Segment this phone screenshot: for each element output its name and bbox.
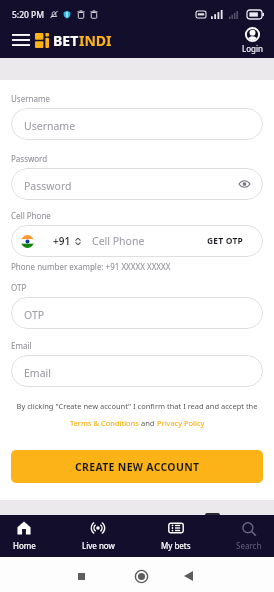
staticText: BET (53, 31, 79, 50)
button[interactable]: Email (11, 355, 263, 387)
button[interactable]: Home (127, 562, 155, 590)
staticText: Username (11, 93, 50, 104)
staticText: CREATE NEW ACCOUNT (75, 460, 200, 474)
staticText: Live now (82, 540, 115, 551)
button[interactable]: GET OTP (207, 235, 244, 247)
staticText: Cell Phone (92, 234, 145, 248)
button[interactable]: Recents (67, 562, 95, 590)
button[interactable]: CREATE NEW ACCOUNT (11, 450, 263, 483)
button[interactable]: Back (174, 562, 202, 590)
staticText: Phone number example: +91 XXXXX XXXXX (11, 261, 171, 272)
other: Show password (239, 180, 250, 188)
button[interactable]: BET (35, 31, 112, 50)
button[interactable]: Select country code (21, 234, 81, 248)
staticText: OTP (24, 308, 45, 322)
button[interactable]: Terms & Conditions (70, 418, 139, 428)
staticText: By clicking "Create new account" I confi… (11, 401, 263, 411)
button[interactable]: Username (11, 108, 263, 140)
button[interactable]: Home (0, 515, 53, 557)
staticText: Login (242, 43, 263, 54)
button[interactable]: My bets (147, 515, 205, 557)
staticText: Password (11, 153, 48, 164)
staticText: Email (11, 340, 32, 351)
staticText: and (139, 418, 157, 428)
staticText: INDI (79, 31, 112, 50)
staticText: 5:20 PM (12, 9, 45, 21)
staticText: Username (24, 119, 76, 133)
staticText: Home (13, 540, 36, 551)
staticText: Cell Phone (11, 210, 51, 221)
staticText: My bets (161, 540, 191, 551)
staticText: Password (24, 179, 72, 193)
staticText: +91 (53, 234, 71, 248)
staticText: Email (24, 366, 51, 380)
button[interactable]: Menu (11, 29, 31, 51)
staticText: Search (236, 540, 262, 551)
button[interactable]: Password (11, 168, 263, 200)
button[interactable]: Privacy Policy (157, 418, 205, 428)
button[interactable]: OTP (11, 297, 263, 329)
button[interactable]: Live now (69, 515, 127, 557)
button[interactable]: Login (242, 27, 263, 54)
staticText: OTP (11, 282, 27, 293)
button[interactable]: Search (220, 515, 274, 557)
